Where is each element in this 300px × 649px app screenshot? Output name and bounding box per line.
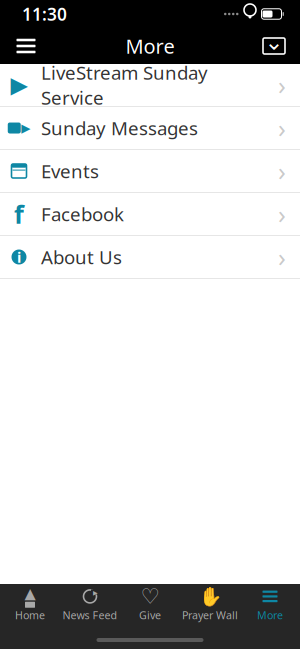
staticText: › bbox=[278, 111, 286, 145]
staticText: › bbox=[278, 68, 286, 102]
staticText: LiveStream Sunday Service bbox=[41, 60, 208, 110]
button[interactable]: ▲ bbox=[0, 582, 60, 628]
button[interactable]: Menu bbox=[4, 28, 48, 64]
staticText: › bbox=[278, 154, 286, 188]
staticText: ▶ bbox=[10, 72, 27, 98]
staticText: Prayer Wall bbox=[182, 608, 238, 622]
staticText: About Us bbox=[41, 245, 122, 269]
button[interactable]: ♡ bbox=[120, 582, 180, 628]
staticText: › bbox=[278, 197, 286, 231]
button[interactable]: ▸ bbox=[60, 582, 120, 628]
button[interactable]: Mail bbox=[252, 28, 296, 64]
staticText: › bbox=[278, 240, 286, 274]
staticText: More bbox=[257, 608, 283, 622]
button[interactable]: ▶ bbox=[0, 64, 300, 107]
button[interactable]: More bbox=[240, 582, 300, 628]
staticText: Give bbox=[139, 608, 161, 622]
staticText: ⌄ bbox=[264, 29, 283, 55]
staticText: Facebook bbox=[41, 202, 124, 226]
staticText: Events bbox=[41, 159, 99, 183]
staticText: ▲ bbox=[24, 585, 35, 602]
staticText: News Feed bbox=[62, 608, 117, 622]
staticText: More bbox=[125, 33, 174, 59]
staticText: ▸ bbox=[93, 587, 98, 598]
button[interactable]: ✋ bbox=[180, 582, 240, 628]
staticText: ♡ bbox=[140, 584, 159, 608]
staticText: f bbox=[14, 197, 24, 231]
staticText: Home bbox=[15, 608, 45, 622]
staticText: 11:30 bbox=[22, 2, 67, 25]
staticText: Sunday Messages bbox=[41, 116, 198, 140]
button[interactable]: ▶ bbox=[0, 107, 300, 150]
button[interactable]: i bbox=[0, 236, 300, 279]
staticText: ▶ bbox=[21, 121, 30, 135]
button[interactable]: Events bbox=[0, 150, 300, 193]
staticText: i bbox=[17, 247, 21, 267]
staticText: ✋ bbox=[198, 586, 221, 607]
button[interactable]: f bbox=[0, 193, 300, 236]
